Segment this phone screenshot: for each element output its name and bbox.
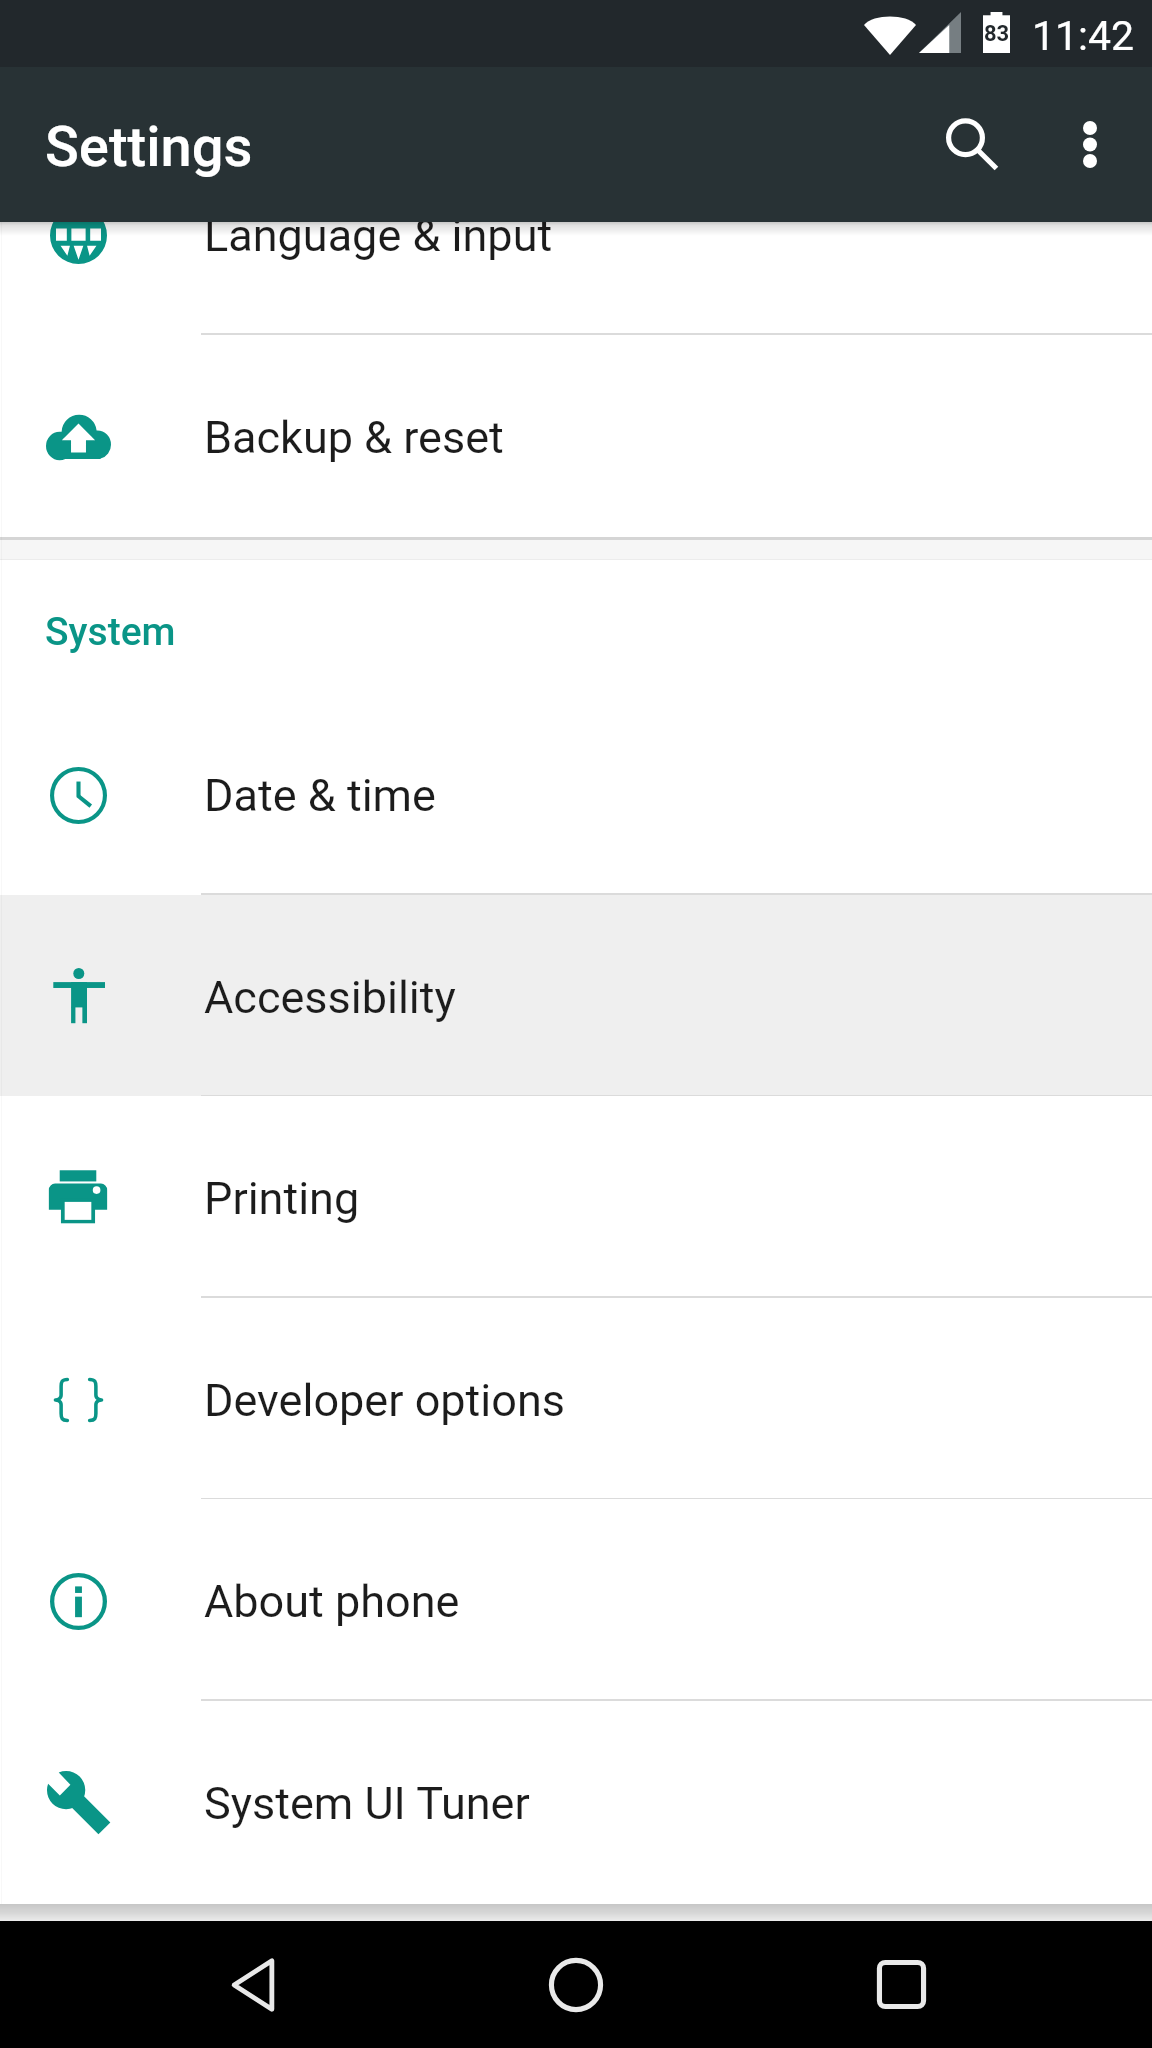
staticText: Date & time bbox=[204, 769, 436, 822]
button[interactable]: Back bbox=[133, 1921, 373, 2048]
button[interactable]: System UI Tuner bbox=[0, 1701, 1152, 1903]
button[interactable]: Backup & reset bbox=[0, 335, 1152, 537]
staticText: System bbox=[45, 609, 176, 655]
staticText: Backup & reset bbox=[204, 411, 504, 464]
button[interactable]: Printing bbox=[0, 1096, 1152, 1298]
staticText: Settings bbox=[45, 114, 253, 180]
staticText: Accessibility bbox=[204, 971, 456, 1024]
button[interactable]: Date & time bbox=[0, 693, 1152, 895]
staticText: 11:42 bbox=[1032, 12, 1135, 60]
staticText: Developer options bbox=[204, 1374, 565, 1427]
button[interactable]: Language & input bbox=[0, 222, 1152, 335]
button[interactable]: About phone bbox=[0, 1499, 1152, 1701]
staticText: Language & input bbox=[204, 222, 553, 262]
staticText: Printing bbox=[204, 1172, 360, 1225]
button[interactable]: Recent apps bbox=[781, 1921, 1021, 2048]
staticText: 83 bbox=[984, 21, 1010, 47]
button[interactable]: Search bbox=[907, 67, 1037, 222]
button[interactable]: More options bbox=[1031, 67, 1149, 222]
button[interactable]: Accessibility bbox=[0, 895, 1152, 1097]
staticText: About phone bbox=[204, 1575, 460, 1628]
button[interactable]: Home bbox=[456, 1921, 696, 2048]
staticText: System UI Tuner bbox=[204, 1777, 530, 1830]
button[interactable]: Developer options bbox=[0, 1298, 1152, 1500]
